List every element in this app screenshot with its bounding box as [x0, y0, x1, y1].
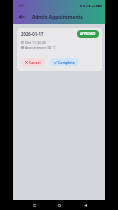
staticText: 2026-01-17: [21, 31, 44, 37]
staticText: Appointment ID: 1: [25, 45, 56, 49]
button[interactable]: Recent apps: [29, 200, 39, 210]
staticText: Complete: [58, 60, 75, 65]
button[interactable]: Home: [54, 200, 64, 210]
button[interactable]: Back: [80, 200, 90, 210]
staticText: Slot 11:30:00: [25, 40, 47, 44]
staticText: Cancel: [29, 60, 41, 65]
staticText: 1:53: [18, 4, 24, 8]
staticText: APPROVED: [80, 32, 96, 36]
staticText: Admin Appointments: [32, 14, 83, 21]
button[interactable]: Back: [19, 11, 31, 23]
button[interactable]: 2026-01-17: [17, 28, 102, 71]
button[interactable]: Cancel: [21, 58, 45, 66]
button[interactable]: Complete: [50, 58, 79, 66]
